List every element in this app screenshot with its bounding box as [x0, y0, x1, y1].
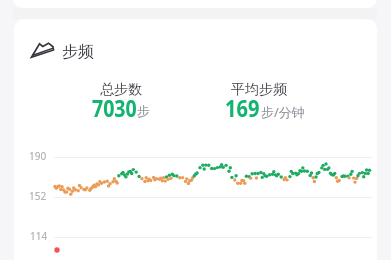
staticText: 152 [29, 189, 47, 203]
staticText: 169 [225, 92, 260, 123]
staticText: 190 [29, 149, 47, 163]
staticText: 步频 [62, 42, 94, 62]
staticText: 步/分钟 [261, 103, 305, 121]
staticText: 总步数 [100, 81, 142, 99]
staticText: 114 [30, 229, 48, 243]
staticText: 步 [137, 103, 150, 119]
staticText: 平均步频 [231, 81, 287, 99]
staticText: 7030 [92, 92, 137, 123]
